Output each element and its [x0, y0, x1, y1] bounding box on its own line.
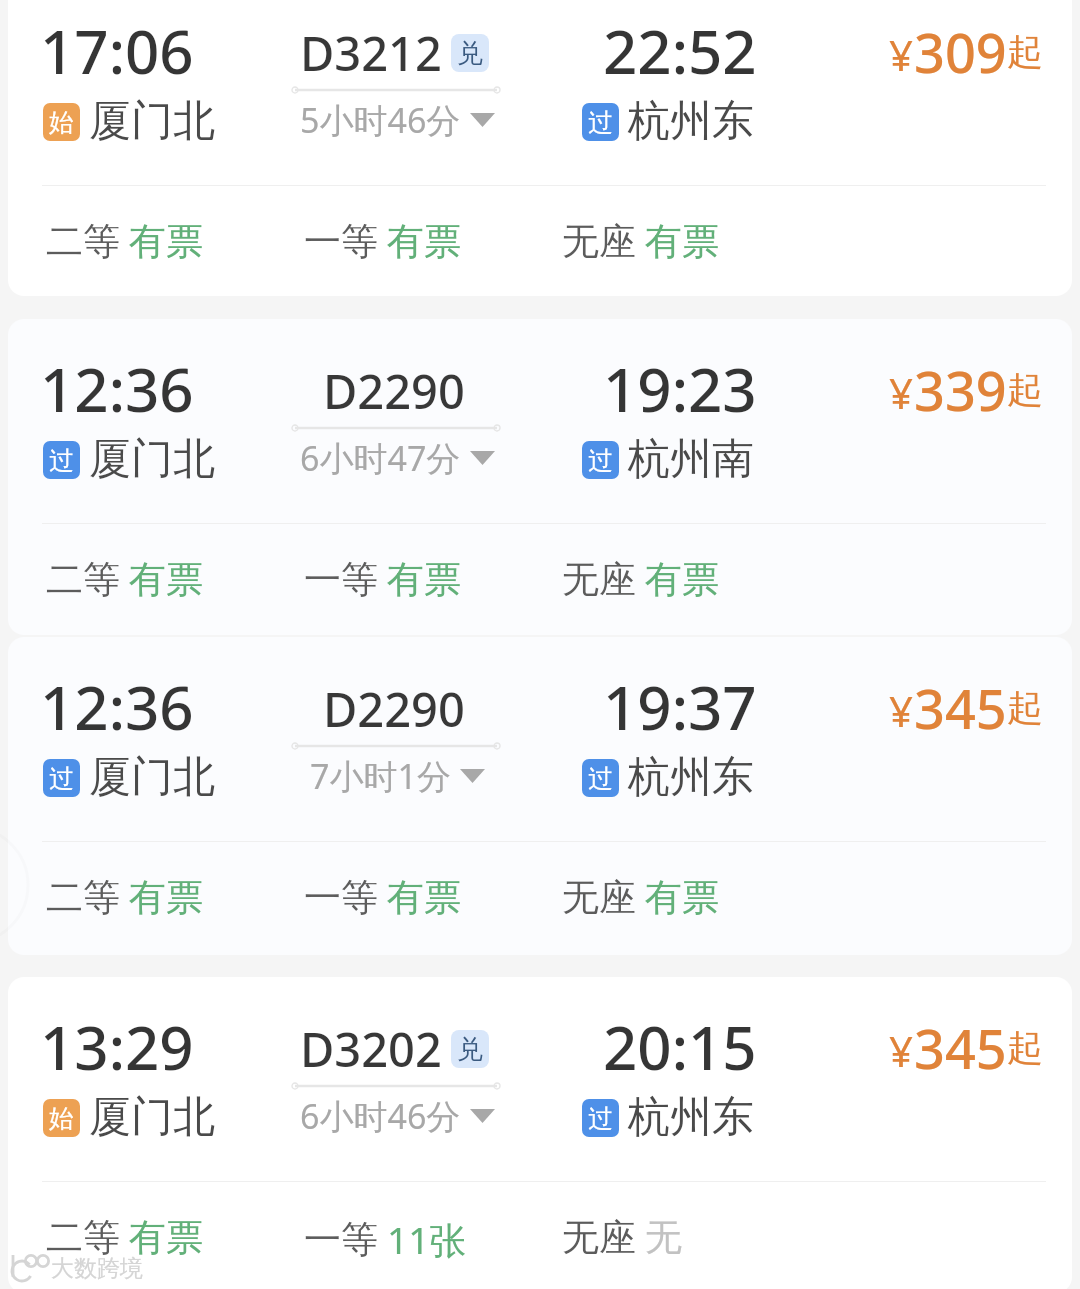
staticText: 一等 — [304, 874, 378, 921]
staticText: 无座 — [562, 556, 636, 603]
staticText: 339 — [914, 353, 1007, 427]
staticText: D3212 — [300, 21, 442, 85]
staticText: 过 — [588, 107, 613, 138]
button[interactable]: 7小时1分 — [310, 753, 485, 799]
staticText: D2290 — [323, 359, 465, 423]
staticText: 一等 — [304, 1216, 378, 1263]
staticText: 兑 — [457, 37, 483, 70]
staticText: 起 — [1007, 685, 1043, 730]
other: Show stops — [470, 445, 495, 471]
staticText: 有票 — [387, 556, 461, 603]
button[interactable]: 6小时47分 — [300, 435, 495, 481]
staticText: 有票 — [129, 556, 203, 603]
staticText: 无座 — [562, 874, 636, 921]
staticText: 一等 — [304, 556, 378, 603]
staticText: 有票 — [645, 218, 719, 265]
staticText: ¥ — [889, 1022, 914, 1079]
button[interactable]: 12:36 — [8, 319, 1072, 635]
staticText: 17:06 — [40, 10, 194, 92]
staticText: 过 — [49, 445, 74, 476]
button[interactable]: 12:36 — [8, 637, 1072, 955]
staticText: 19:37 — [603, 666, 757, 748]
staticText: ¥ — [889, 26, 914, 83]
button[interactable]: 一等 — [304, 218, 461, 265]
staticText: 厦门北 — [89, 751, 215, 804]
staticText: 过 — [588, 1103, 613, 1134]
staticText: 有票 — [645, 556, 719, 603]
button[interactable]: 一等 — [304, 874, 461, 921]
staticText: 厦门北 — [89, 1091, 215, 1144]
staticText: 6小时46分 — [300, 1093, 461, 1139]
staticText: 有票 — [129, 218, 203, 265]
staticText: 起 — [1007, 367, 1043, 412]
staticText: ¥ — [889, 364, 914, 421]
staticText: 厦门北 — [89, 433, 215, 486]
button[interactable]: 二等 — [46, 218, 203, 265]
staticText: 兑 — [457, 1033, 483, 1066]
staticText: 有票 — [645, 874, 719, 921]
staticText: ¥ — [889, 682, 914, 739]
staticText: 杭州南 — [628, 433, 754, 486]
button[interactable]: 无座 — [562, 556, 719, 603]
staticText: 过 — [588, 763, 613, 794]
staticText: 22:52 — [603, 10, 757, 92]
button[interactable]: 一等 — [304, 556, 461, 603]
staticText: 过 — [49, 763, 74, 794]
staticText: 杭州东 — [628, 751, 754, 804]
button[interactable]: 5小时46分 — [300, 97, 495, 143]
button[interactable]: 二等 — [46, 556, 203, 603]
button[interactable]: 二等 — [46, 874, 203, 921]
staticText: 起 — [1007, 29, 1043, 74]
button[interactable]: 无座 — [562, 1214, 682, 1261]
button[interactable]: 17:06 — [8, 0, 1072, 296]
staticText: 有票 — [129, 874, 203, 921]
other: Show stops — [460, 763, 485, 789]
button[interactable]: 无座 — [562, 874, 719, 921]
staticText: 345 — [914, 1011, 1007, 1085]
staticText: 二等 — [46, 556, 120, 603]
staticText: 起 — [1007, 1025, 1043, 1070]
other: Show stops — [470, 107, 495, 133]
staticText: 6小时47分 — [300, 435, 461, 481]
staticText: D2290 — [323, 677, 465, 741]
button[interactable]: 一等 — [304, 1214, 467, 1265]
button[interactable]: 6小时46分 — [300, 1093, 495, 1139]
staticText: 始 — [49, 107, 74, 138]
staticText: 始 — [49, 1103, 74, 1134]
other: Show stops — [470, 1103, 495, 1129]
staticText: 二等 — [46, 874, 120, 921]
staticText: 345 — [914, 671, 1007, 745]
staticText: 杭州东 — [628, 95, 754, 148]
staticText: 一等 — [304, 218, 378, 265]
staticText: 7小时1分 — [310, 753, 451, 799]
staticText: D3202 — [300, 1017, 442, 1081]
staticText: 20:15 — [603, 1006, 757, 1088]
staticText: 无座 — [562, 218, 636, 265]
staticText: 13:29 — [40, 1006, 194, 1088]
staticText: 过 — [588, 445, 613, 476]
staticText: 无 — [645, 1214, 682, 1261]
staticText: 有票 — [129, 1214, 203, 1261]
staticText: 19:23 — [603, 348, 757, 430]
staticText: 有票 — [387, 874, 461, 921]
staticText: 5小时46分 — [300, 97, 461, 143]
staticText: 11张 — [387, 1214, 467, 1265]
button[interactable]: 无座 — [562, 218, 719, 265]
staticText: 杭州东 — [628, 1091, 754, 1144]
staticText: 大数跨境 — [51, 1254, 143, 1283]
button[interactable]: 二等 — [46, 1214, 203, 1261]
staticText: 12:36 — [40, 348, 194, 430]
button[interactable]: 13:29 — [8, 977, 1072, 1289]
staticText: 二等 — [46, 218, 120, 265]
staticText: 二等 — [46, 1214, 120, 1261]
staticText: 无座 — [562, 1214, 636, 1261]
staticText: 有票 — [387, 218, 461, 265]
staticText: 309 — [914, 15, 1007, 89]
staticText: 12:36 — [40, 666, 194, 748]
staticText: 厦门北 — [89, 95, 215, 148]
